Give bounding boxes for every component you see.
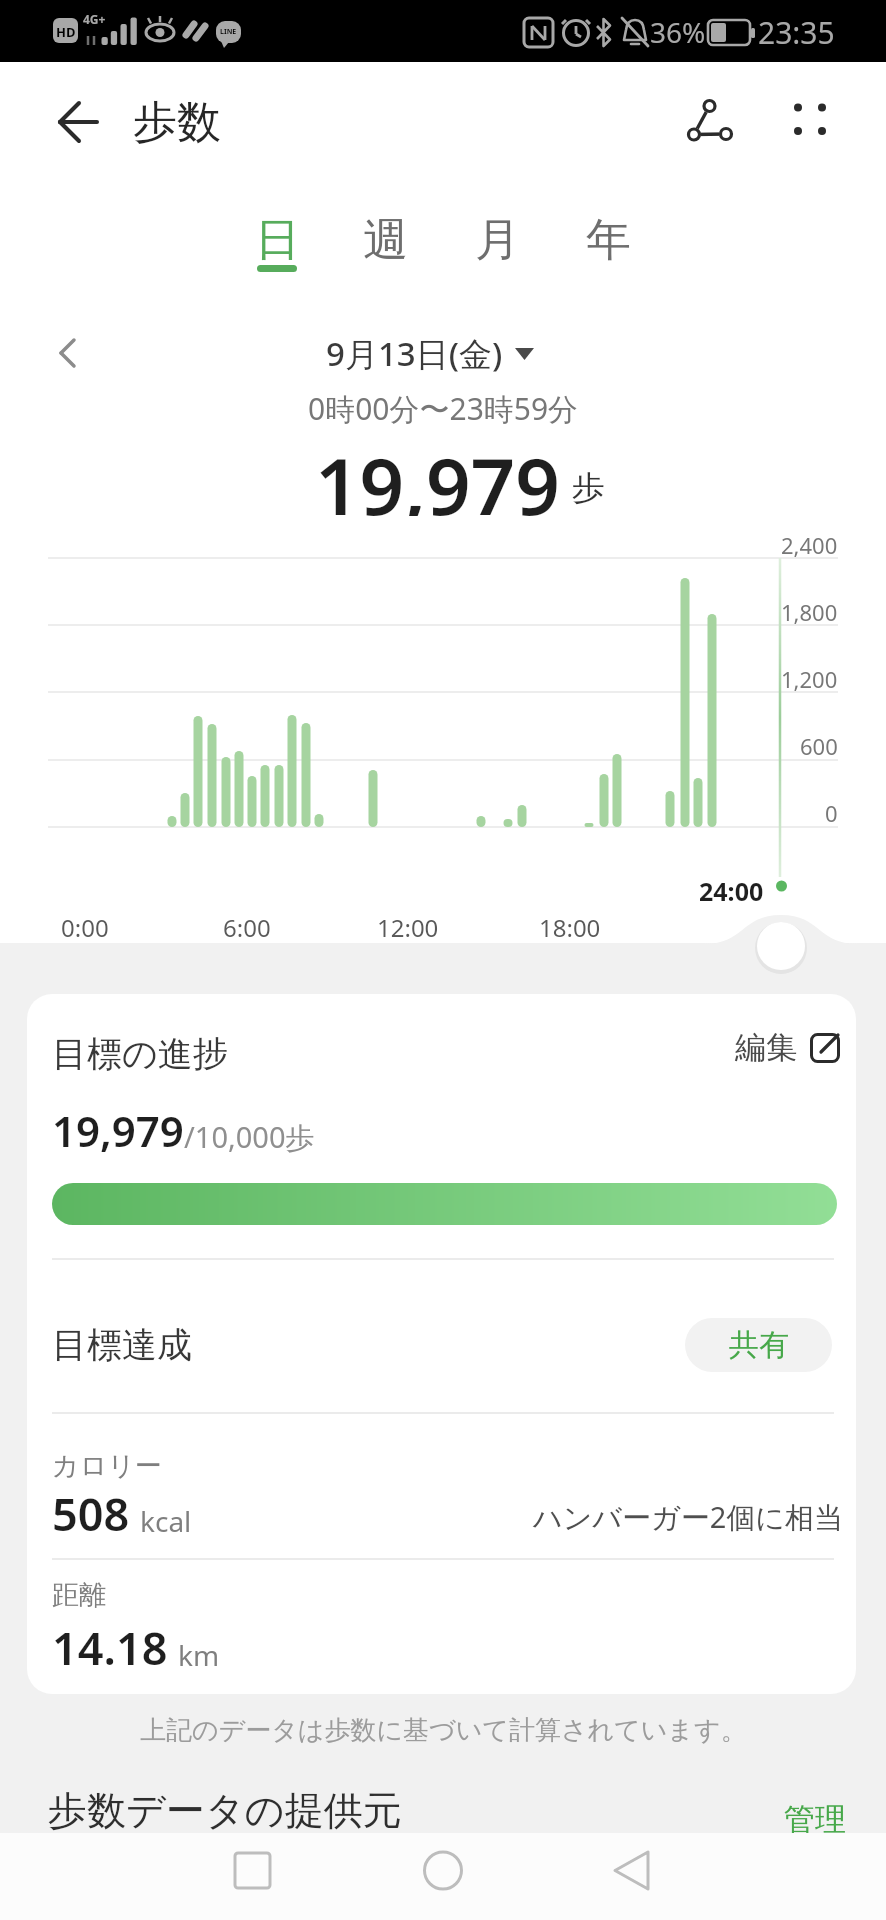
staticText: 36% (650, 13, 706, 51)
staticText: 1,200 (781, 664, 838, 694)
button[interactable]: 週 (345, 205, 425, 275)
button[interactable] (676, 92, 740, 152)
staticText: 歩 (572, 467, 605, 509)
staticText: 23:35 (758, 12, 835, 53)
staticText: 4G+ (83, 11, 106, 27)
button[interactable] (757, 922, 805, 970)
button[interactable]: 共有 (685, 1318, 832, 1372)
staticText: /10,000歩 (184, 1117, 315, 1157)
button[interactable] (594, 1840, 660, 1906)
staticText: 0 (825, 798, 838, 828)
staticText: 19,979 (52, 1102, 184, 1159)
staticText: 日 (255, 212, 300, 269)
staticText: 9月13日(金) (326, 331, 503, 376)
staticText: kcal (140, 1502, 192, 1540)
staticText: 14.18 (52, 1617, 168, 1677)
staticText: 24:00 (699, 874, 764, 908)
staticText: 目標達成 (52, 1323, 192, 1367)
staticText: 編集 (735, 1028, 797, 1067)
staticText: 歩数 (133, 95, 221, 150)
staticText: LINE (220, 27, 237, 37)
staticText: 距離 (52, 1578, 106, 1612)
button[interactable]: 9月13日(金) (280, 330, 580, 376)
button[interactable]: 管理 (746, 1794, 846, 1844)
staticText: 18:00 (539, 911, 601, 944)
staticText: 0時00分〜23時59分 (308, 388, 579, 428)
button[interactable]: 月 (457, 205, 537, 275)
staticText: 月 (475, 212, 520, 269)
staticText: 共有 (729, 1326, 789, 1364)
button[interactable] (40, 94, 100, 150)
staticText: 年 (586, 212, 631, 269)
staticText: 12:00 (377, 911, 439, 944)
button[interactable]: 編集 (660, 1021, 840, 1073)
button[interactable] (410, 1840, 476, 1906)
staticText: 歩数データの提供元 (48, 1786, 402, 1835)
staticText: ハンバーガー2個に相当 (533, 1497, 843, 1537)
staticText: 1,800 (781, 597, 838, 627)
staticText: カロリー (52, 1449, 162, 1483)
button[interactable]: 年 (568, 205, 648, 275)
button[interactable] (40, 330, 90, 376)
staticText: 目標の進捗 (52, 1032, 228, 1076)
button[interactable] (786, 95, 836, 145)
staticText: km (178, 1636, 220, 1674)
staticText: 19,979 (315, 432, 560, 516)
staticText: 2,400 (781, 530, 838, 560)
button[interactable]: 日 (237, 205, 317, 275)
staticText: HD (56, 23, 76, 41)
staticText: 0:00 (61, 911, 109, 944)
staticText: 508 (52, 1483, 130, 1543)
button[interactable] (220, 1840, 286, 1906)
staticText: 週 (363, 212, 408, 269)
staticText: 管理 (784, 1800, 846, 1839)
staticText: 上記のデータは歩数に基づいて計算されています。 (140, 1714, 747, 1747)
staticText: 6:00 (223, 911, 271, 944)
staticText: 600 (800, 731, 838, 761)
